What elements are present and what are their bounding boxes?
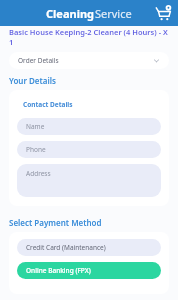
button[interactable]: Contact Details bbox=[17, 97, 79, 112]
button[interactable]: Credit Card (Maintenance) bbox=[17, 239, 161, 256]
staticText: Phone bbox=[26, 145, 46, 154]
button[interactable]: Address bbox=[17, 164, 161, 197]
staticText: Cleaning bbox=[46, 6, 95, 21]
staticText: Credit Card (Maintenance) bbox=[26, 243, 106, 252]
button[interactable]: Shopping cart bbox=[154, 4, 173, 23]
staticText: Your Details bbox=[9, 75, 56, 86]
staticText: Basic House Keeping-2 Cleaner (4 Hours) … bbox=[9, 27, 169, 47]
staticText: Contact Details bbox=[23, 100, 73, 109]
staticText: Online Banking (FPX) bbox=[26, 266, 91, 275]
button[interactable]: Online Banking (FPX) bbox=[17, 262, 161, 279]
staticText: Name bbox=[26, 122, 45, 131]
staticText: Select Payment Method bbox=[9, 217, 102, 228]
button[interactable]: Name bbox=[17, 118, 161, 135]
staticText: Order Details bbox=[18, 56, 153, 65]
staticText: Address bbox=[26, 169, 51, 178]
button[interactable]: Order Details bbox=[9, 52, 169, 69]
button[interactable]: Phone bbox=[17, 141, 161, 158]
staticText: Service bbox=[95, 6, 132, 21]
